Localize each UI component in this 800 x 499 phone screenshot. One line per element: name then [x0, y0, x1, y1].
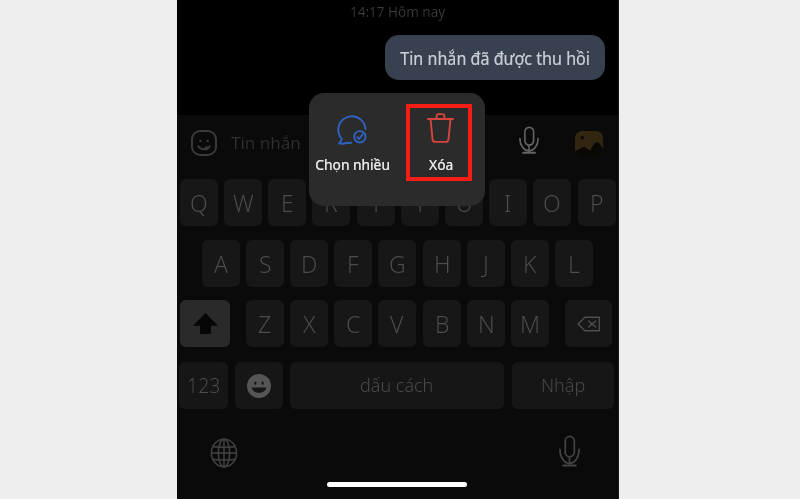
button[interactable]: [410, 108, 468, 176]
button[interactable]: Shift: [180, 300, 230, 347]
staticText: B: [435, 308, 450, 339]
staticText: G: [389, 248, 406, 279]
staticText: D: [301, 248, 318, 279]
staticText: K: [523, 248, 537, 279]
button[interactable]: 123: [179, 362, 228, 409]
button[interactable]: J: [467, 240, 505, 287]
staticText: F: [347, 248, 359, 279]
button[interactable]: N: [467, 300, 505, 347]
staticText: H: [434, 248, 451, 279]
staticText: Chọn nhiều: [315, 154, 391, 172]
staticText: R: [324, 187, 338, 218]
button[interactable]: L: [555, 240, 593, 287]
staticText: Z: [258, 308, 272, 339]
staticText: J: [483, 248, 489, 279]
staticText: C: [346, 308, 361, 339]
staticText: dấu cách: [360, 373, 434, 398]
staticText: O: [543, 187, 561, 218]
staticText: Q: [190, 187, 208, 218]
button[interactable]: Emoji: [235, 362, 283, 409]
button[interactable]: Gallery: [573, 127, 605, 159]
button[interactable]: Voice message: [514, 125, 544, 155]
staticText: L: [568, 248, 580, 279]
button[interactable]: G: [378, 240, 416, 287]
button[interactable]: S: [246, 240, 284, 287]
staticText: T: [370, 187, 383, 218]
button[interactable]: R: [312, 179, 350, 226]
button[interactable]: Q: [180, 179, 218, 226]
button[interactable]: dấu cách: [290, 362, 504, 409]
staticText: N: [478, 308, 495, 339]
button[interactable]: [385, 35, 605, 80]
button[interactable]: E: [268, 179, 306, 226]
button[interactable]: V: [378, 300, 416, 347]
button[interactable]: M: [511, 300, 549, 347]
button[interactable]: A: [202, 240, 240, 287]
button[interactable]: C: [334, 300, 372, 347]
staticText: Tin nhắn: [231, 131, 301, 154]
button[interactable]: D: [290, 240, 328, 287]
staticText: 14:17 Hôm nay: [350, 3, 446, 21]
button[interactable]: Dictation: [552, 433, 587, 470]
button[interactable]: K: [511, 240, 549, 287]
staticText: Nhập: [541, 373, 586, 398]
staticText: Tin nhắn đã được thu hồi: [400, 45, 591, 70]
button[interactable]: B: [423, 300, 461, 347]
button[interactable]: I: [489, 179, 527, 226]
button[interactable]: Z: [246, 300, 284, 347]
button[interactable]: W: [224, 179, 262, 226]
button[interactable]: F: [334, 240, 372, 287]
button[interactable]: Y: [401, 179, 439, 226]
staticText: I: [504, 187, 512, 218]
button[interactable]: Stickers: [188, 127, 219, 158]
staticText: Y: [414, 187, 427, 218]
staticText: W: [233, 187, 254, 218]
button[interactable]: Backspace: [565, 300, 612, 347]
staticText: U: [456, 187, 473, 218]
button[interactable]: H: [423, 240, 461, 287]
staticText: E: [281, 187, 294, 218]
button[interactable]: T: [357, 179, 395, 226]
staticText: M: [520, 308, 541, 339]
staticText: Xóa: [429, 154, 454, 172]
button[interactable]: U: [445, 179, 483, 226]
staticText: 123: [187, 372, 221, 399]
button[interactable]: X: [290, 300, 328, 347]
staticText: X: [303, 308, 316, 339]
staticText: P: [590, 187, 604, 218]
staticText: S: [259, 248, 272, 279]
button[interactable]: P: [578, 179, 616, 226]
button[interactable]: O: [533, 179, 571, 226]
staticText: V: [390, 308, 404, 339]
button[interactable]: [317, 104, 389, 181]
staticText: A: [214, 248, 228, 279]
button[interactable]: Change language: [207, 436, 241, 470]
button[interactable]: Nhập: [512, 362, 614, 409]
